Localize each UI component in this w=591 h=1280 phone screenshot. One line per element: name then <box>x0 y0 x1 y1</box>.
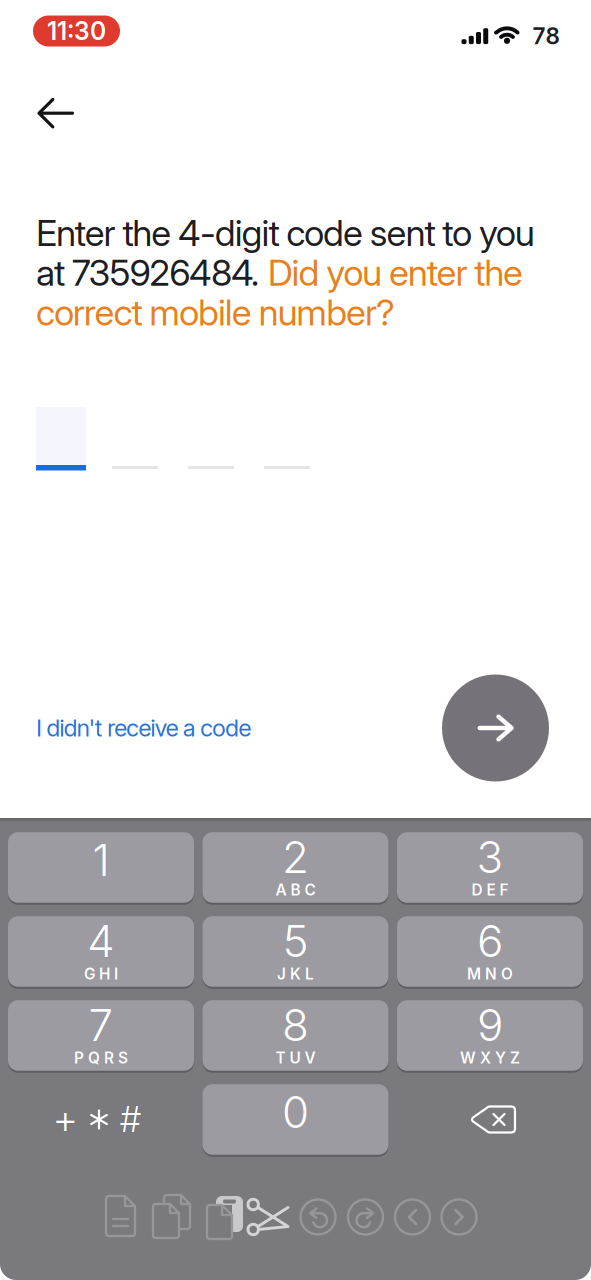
staticText: + <box>53 1095 78 1144</box>
button[interactable]: 11:30 <box>33 15 120 46</box>
button[interactable] <box>36 407 86 470</box>
button[interactable] <box>394 1199 430 1235</box>
staticText: 7 <box>88 998 113 1052</box>
button[interactable] <box>247 1196 293 1238</box>
staticText: correct mobile number? <box>36 291 395 334</box>
button[interactable] <box>442 674 549 781</box>
staticText: A B C <box>275 881 315 899</box>
button[interactable] <box>441 1199 477 1235</box>
staticText: # <box>120 1098 141 1140</box>
staticText: G H I <box>84 965 118 983</box>
staticText: J K L <box>277 965 314 983</box>
button[interactable]: 9 <box>397 999 583 1071</box>
button[interactable] <box>188 466 238 470</box>
staticText: 0 <box>282 1085 309 1139</box>
button[interactable]: 1 <box>8 831 194 903</box>
button[interactable]: 5 <box>202 915 388 987</box>
staticText: Enter the 4-digit code sent to you <box>36 211 535 255</box>
button[interactable]: 4 <box>8 915 194 987</box>
staticText: 11:30 <box>47 16 106 46</box>
staticText: 9 <box>477 998 503 1052</box>
button[interactable] <box>264 466 314 470</box>
staticText: W X Y Z <box>460 1049 520 1067</box>
staticText: D E F <box>471 881 508 899</box>
staticText: 1 <box>92 833 109 887</box>
button[interactable]: 0 <box>202 1083 388 1155</box>
button[interactable] <box>200 1194 244 1240</box>
staticText: 6 <box>477 914 503 968</box>
button[interactable] <box>347 1199 383 1235</box>
button[interactable]: 3 <box>397 831 583 903</box>
staticText: 4 <box>87 914 115 968</box>
staticText: I didn't receive a code <box>36 714 251 742</box>
staticText: P Q R S <box>74 1049 128 1067</box>
staticText: M N O <box>467 965 513 983</box>
button[interactable] <box>460 1097 520 1141</box>
staticText: 5 <box>282 914 308 968</box>
staticText: T U V <box>275 1049 315 1067</box>
button[interactable]: 6 <box>397 915 583 987</box>
staticText: at 735926484. <box>36 251 268 294</box>
button[interactable]: 8 <box>202 999 388 1071</box>
staticText: 8 <box>282 998 309 1052</box>
button[interactable] <box>103 1194 139 1240</box>
staticText: 3 <box>476 830 503 884</box>
staticText: 78 <box>532 22 559 50</box>
button[interactable] <box>27 85 85 141</box>
staticText: Did you enter the <box>268 251 523 294</box>
button[interactable]: 7 <box>8 999 194 1071</box>
button[interactable] <box>150 1194 194 1240</box>
staticText: 2 <box>282 830 309 884</box>
button[interactable] <box>300 1199 336 1235</box>
button[interactable] <box>112 466 162 470</box>
button[interactable]: 2 <box>202 831 388 903</box>
button[interactable]: + <box>27 1089 167 1149</box>
button[interactable]: I didn't receive a code <box>36 714 251 742</box>
